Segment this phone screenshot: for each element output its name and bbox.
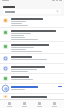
button[interactable]: Filter <box>56 10 59 13</box>
button[interactable]: Notifications <box>34 100 45 108</box>
button[interactable] <box>0 16 64 27</box>
button[interactable]: Filter <box>3 9 61 14</box>
button[interactable]: Home <box>4 100 15 108</box>
button[interactable] <box>0 54 64 63</box>
button[interactable] <box>0 74 64 83</box>
button[interactable] <box>0 64 64 73</box>
button[interactable] <box>0 28 64 41</box>
button[interactable] <box>0 42 64 53</box>
button[interactable] <box>0 94 64 99</box>
button[interactable] <box>0 84 64 93</box>
button[interactable]: Search <box>19 100 30 108</box>
button[interactable]: Profile <box>49 100 60 108</box>
